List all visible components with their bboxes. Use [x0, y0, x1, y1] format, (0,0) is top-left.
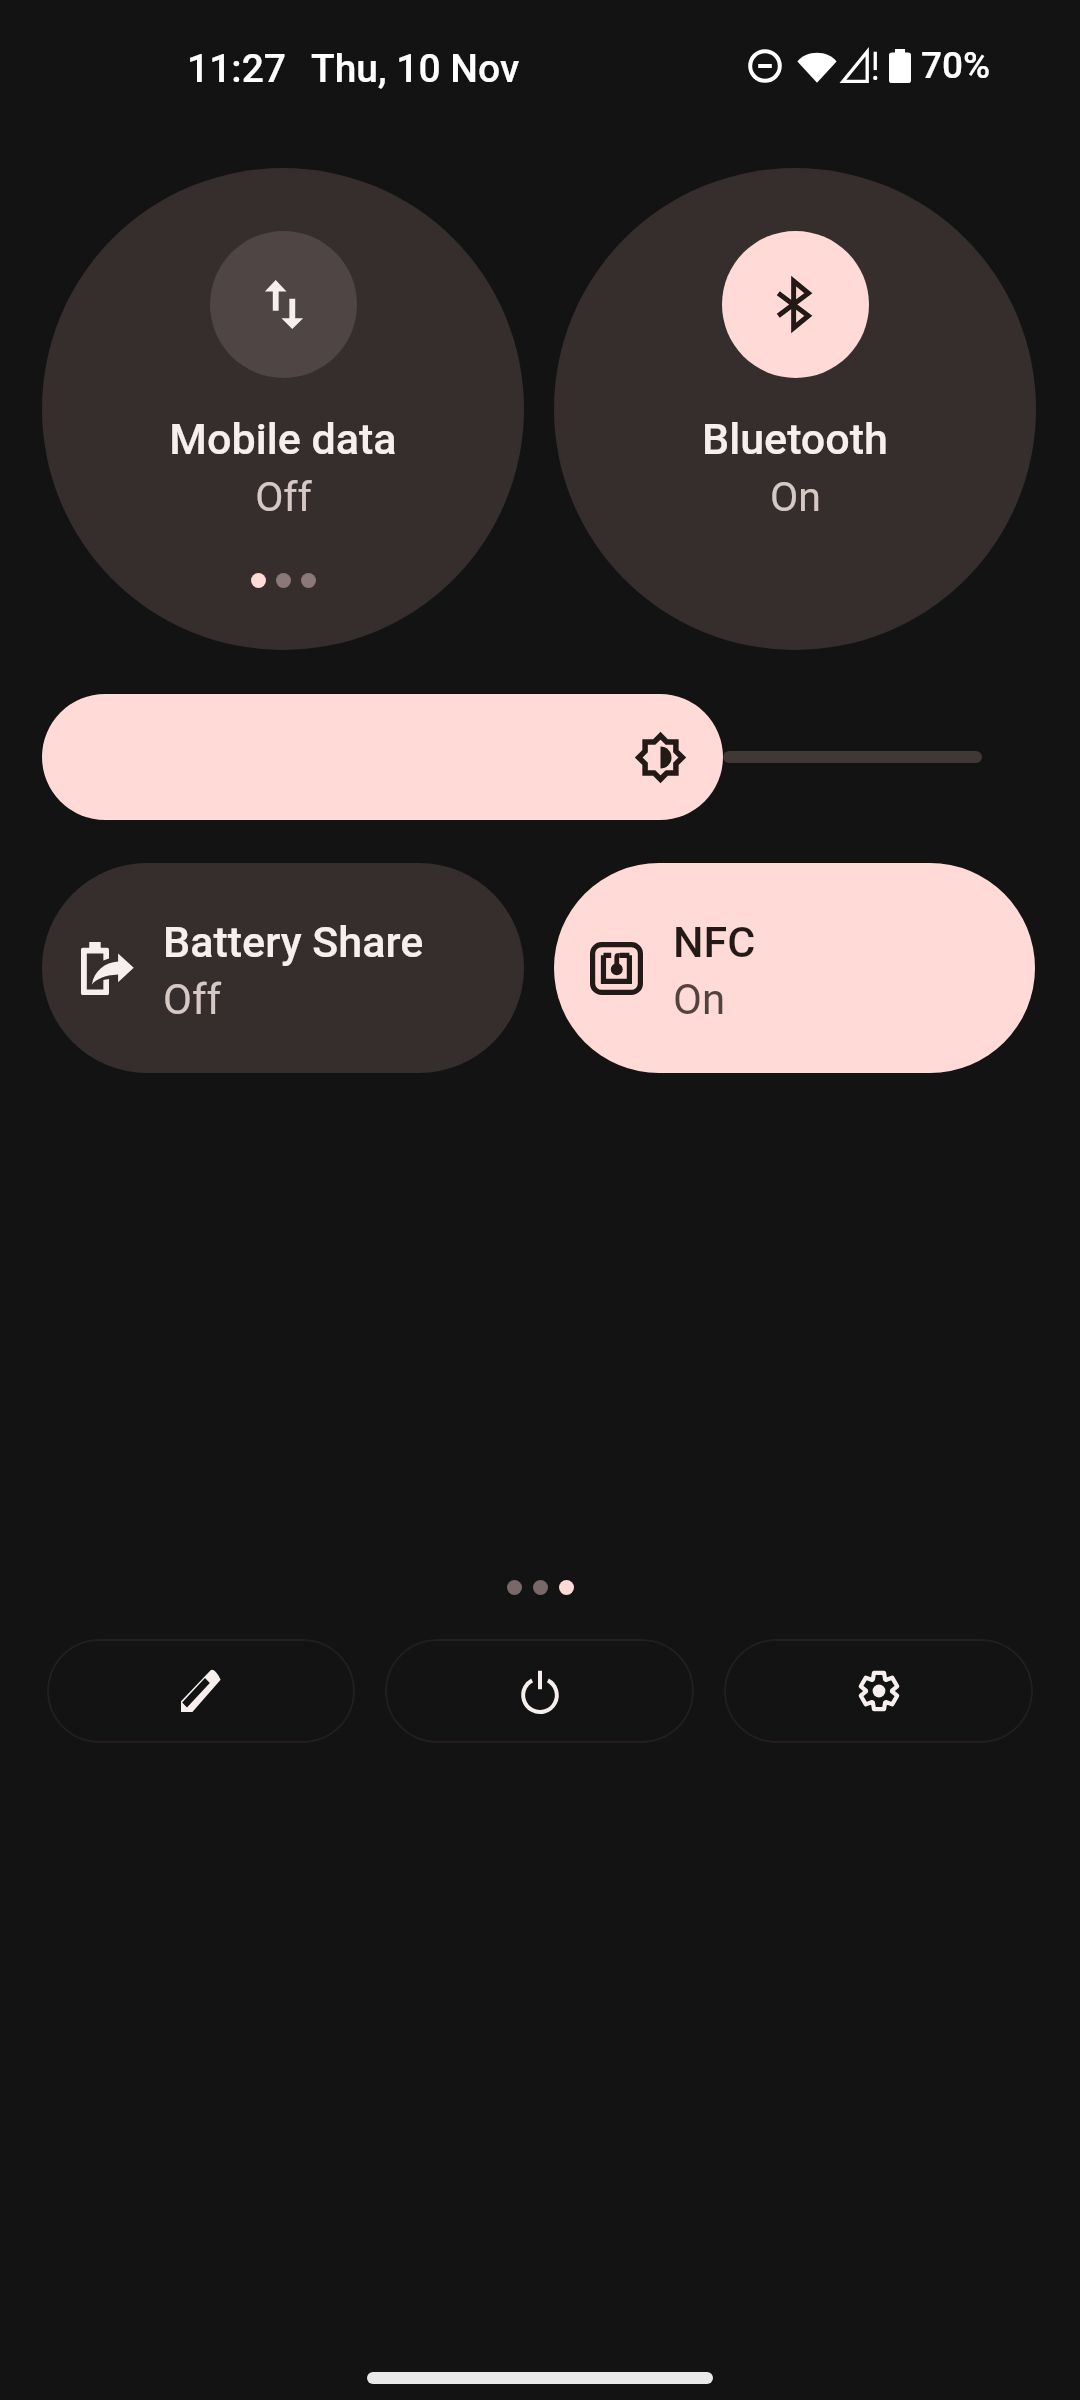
button[interactable]: Settings [724, 1639, 1033, 1743]
staticText: Thu, 10 Nov [311, 46, 520, 92]
staticText: 11:27 [187, 46, 287, 92]
button[interactable]: Battery Share [42, 863, 524, 1073]
button[interactable]: Bluetooth [554, 168, 1036, 650]
staticText: Off [255, 473, 312, 521]
staticText: Mobile data [169, 414, 397, 464]
staticText: Bluetooth [702, 414, 888, 464]
staticText: Off [163, 975, 222, 1024]
staticText: NFC [673, 917, 756, 967]
staticText: On [673, 975, 726, 1024]
staticText: Battery Share [163, 917, 424, 967]
staticText: On [770, 473, 821, 521]
staticText: 70% [921, 44, 991, 87]
button[interactable]: Power [385, 1639, 694, 1743]
button[interactable]: Mobile data [42, 168, 524, 650]
button[interactable]: Brightness [42, 694, 982, 820]
button[interactable]: NFC [554, 863, 1035, 1073]
button[interactable]: Edit [47, 1639, 355, 1743]
